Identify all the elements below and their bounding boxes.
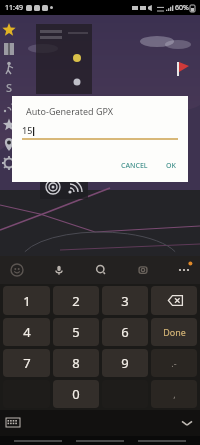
staticText: 15 <box>22 124 33 136</box>
button[interactable]: Backspace <box>151 286 197 315</box>
staticText: 1 <box>23 292 31 310</box>
staticText: 6 <box>121 323 129 341</box>
staticText: 5 <box>72 323 80 341</box>
button[interactable]: Emoji <box>6 259 28 281</box>
staticText: 0 <box>72 385 80 403</box>
staticText: Done <box>163 326 186 338</box>
staticText: 60% <box>175 3 189 13</box>
button[interactable]: CANCEL <box>117 158 152 174</box>
button[interactable]: 5 <box>53 318 99 346</box>
staticText: 11:49 <box>5 3 23 13</box>
button[interactable]: Favourites <box>1 22 17 38</box>
button[interactable]: 6 <box>102 318 148 346</box>
button[interactable]: Walk <box>1 60 17 76</box>
button[interactable]: Done <box>151 318 197 346</box>
staticText: OK <box>166 161 176 171</box>
button[interactable]: Location <box>1 136 17 152</box>
staticText: S <box>6 80 13 95</box>
button[interactable]: Translate <box>132 259 154 281</box>
button[interactable]: 3 <box>102 286 148 315</box>
staticText: Auto-Generated GPX <box>26 105 114 117</box>
button[interactable]: Search <box>90 259 112 281</box>
button[interactable]: .- <box>151 349 197 377</box>
button[interactable]: Voice input <box>48 259 70 281</box>
staticText: 9 <box>121 354 129 372</box>
button[interactable]: Hide keyboard <box>180 416 194 430</box>
staticText: , <box>173 388 176 400</box>
button[interactable]: 1 <box>3 286 50 315</box>
button[interactable]: 2 <box>53 286 99 315</box>
button[interactable]: , <box>151 380 197 408</box>
button[interactable]: More options <box>174 260 194 280</box>
button[interactable]: Signal <box>1 98 17 114</box>
button[interactable]: Broadcast <box>67 179 83 195</box>
button[interactable]: 0 <box>53 380 99 408</box>
button[interactable]: Map <box>1 41 17 57</box>
staticText: 2 <box>72 292 80 310</box>
staticText: 7 <box>23 354 31 372</box>
button[interactable]: Bookmark <box>1 117 17 133</box>
staticText: 3 <box>121 292 129 310</box>
button[interactable]: Target <box>45 179 61 195</box>
staticText: .- <box>171 357 177 369</box>
button[interactable]: OK <box>162 158 180 174</box>
button[interactable]: 7 <box>3 349 50 377</box>
button[interactable]: Settings <box>1 155 17 171</box>
button[interactable]: 8 <box>53 349 99 377</box>
staticText: 4 <box>23 323 31 341</box>
button[interactable]: Switch keyboard <box>6 416 20 430</box>
staticText: 8 <box>72 354 80 372</box>
button[interactable]: 4 <box>3 318 50 346</box>
staticText: CANCEL <box>121 161 148 171</box>
button[interactable]: 9 <box>102 349 148 377</box>
button[interactable]: Settings S <box>1 79 17 95</box>
